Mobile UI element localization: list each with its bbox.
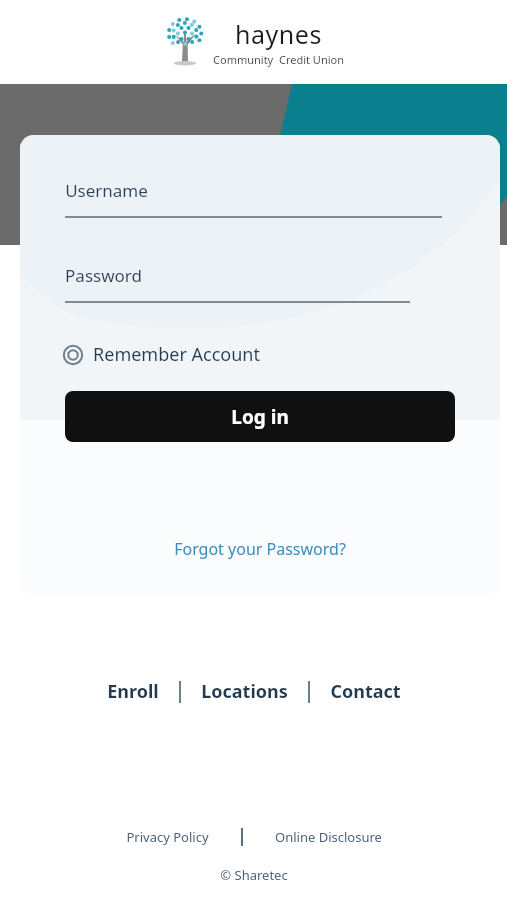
staticText: Remember Account [93,342,260,367]
staticText: Privacy Policy [126,828,209,846]
staticText: Enroll [107,679,159,704]
staticText: Online Disclosure [275,828,382,846]
staticText: Username [65,179,148,202]
staticText: Locations [201,679,288,704]
button[interactable]: Contact [324,673,407,710]
button[interactable]: Online Disclosure [269,822,388,852]
staticText: © Sharetec [220,866,288,884]
staticText: Password [65,264,142,287]
button[interactable]: Enroll [101,673,165,710]
staticText: Log in [231,404,289,430]
button[interactable]: Log in [65,391,455,442]
other: Remember Account toggle [63,345,83,365]
button[interactable]: Password [20,264,500,303]
staticText: Community Credit Union [213,52,344,67]
button[interactable]: Privacy Policy [120,822,215,852]
button[interactable]: Username [20,179,500,218]
button[interactable]: Forgot your Password? [166,534,354,564]
staticText: haynes [235,17,322,51]
staticText: Forgot your Password? [174,538,346,560]
button[interactable]: Locations [195,673,294,710]
button[interactable]: Remember Account toggle [63,340,272,369]
staticText: Contact [330,679,401,704]
